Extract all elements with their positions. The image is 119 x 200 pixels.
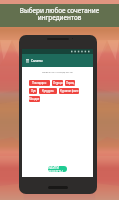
staticText: Моцарелла bbox=[29, 97, 40, 101]
button[interactable]: Куриное филе bbox=[59, 88, 79, 94]
staticText: Перец bbox=[66, 81, 75, 85]
staticText: ВЫБЕРИТЕ ИНГРЕДИЕНТЫ bbox=[22, 70, 93, 73]
button[interactable]: Моцарелла bbox=[29, 96, 40, 102]
button[interactable]: Огурцы bbox=[52, 80, 63, 86]
staticText: Лук bbox=[31, 89, 36, 93]
staticText: Помидоры bbox=[32, 81, 47, 85]
staticText: Куриное филе bbox=[60, 89, 79, 93]
staticText: НАЙТИ РЕЦЕПТЫ bbox=[48, 166, 67, 172]
staticText: Салаты bbox=[31, 59, 43, 63]
button[interactable]: Лук bbox=[29, 88, 37, 94]
button[interactable]: Помидоры bbox=[29, 80, 50, 86]
staticText: Кукуруза bbox=[42, 89, 54, 93]
button[interactable]: Перец bbox=[65, 80, 75, 86]
staticText: Выбери любое сочетание ингредиентов bbox=[0, 6, 119, 22]
other: Menu bbox=[26, 59, 29, 62]
button[interactable]: Кукуруза bbox=[39, 88, 57, 94]
button[interactable]: НАЙТИ РЕЦЕПТЫ bbox=[48, 166, 67, 172]
staticText: Огурцы bbox=[53, 81, 63, 85]
button[interactable]: Menu bbox=[22, 54, 93, 67]
